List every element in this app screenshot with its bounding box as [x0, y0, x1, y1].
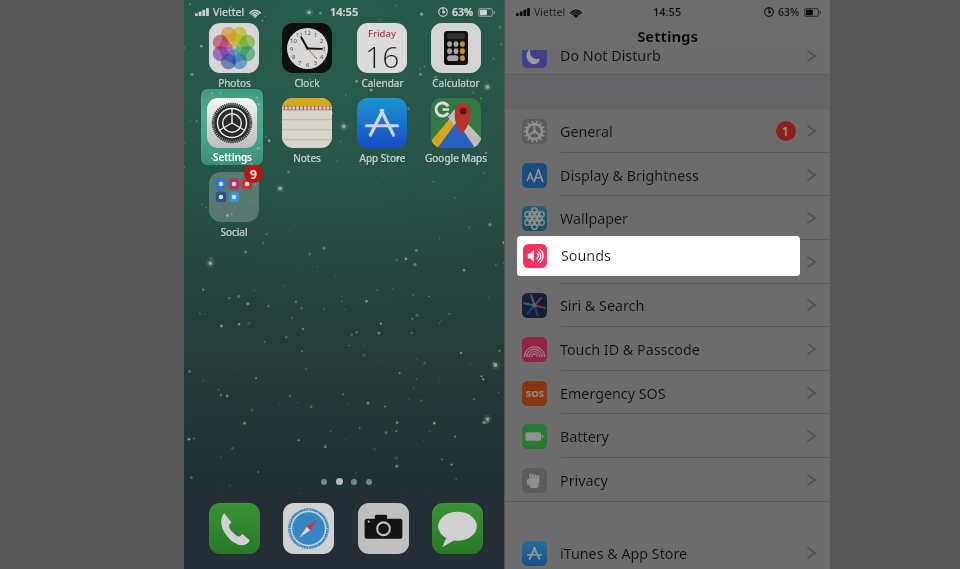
staticText: 2	[320, 37, 324, 45]
staticText: 7	[298, 59, 302, 67]
staticText: 11	[296, 31, 303, 39]
staticText: 4	[320, 53, 324, 61]
button[interactable]: Settings	[201, 89, 263, 165]
button[interactable]: Phone	[209, 503, 260, 554]
button[interactable]: Camera	[358, 503, 409, 554]
button[interactable]: Sounds	[517, 236, 800, 276]
staticText: 63%	[452, 5, 474, 19]
staticText: 14:55	[653, 4, 682, 19]
staticText: Settings	[505, 26, 830, 46]
button[interactable]: Notes	[270, 98, 344, 165]
staticText: 16	[365, 36, 400, 69]
staticText: 14:55	[330, 4, 359, 19]
button[interactable]: App Store	[345, 98, 419, 165]
staticText: SOS	[526, 387, 544, 400]
staticText: 1	[314, 31, 318, 39]
button[interactable]: Siri & Search	[505, 283, 830, 327]
staticText: 1	[782, 123, 790, 140]
button[interactable]: Safari	[283, 503, 334, 554]
button[interactable]: Sounds	[505, 240, 830, 284]
staticText: Do Not Disturb	[560, 50, 661, 65]
button[interactable]: 1	[270, 23, 344, 90]
staticText: Google Maps	[425, 151, 487, 165]
button[interactable]: Wallpaper	[505, 196, 830, 240]
staticText: Privacy	[560, 471, 608, 490]
staticText: Calendar	[361, 76, 404, 90]
button[interactable]: Messages	[432, 503, 483, 554]
staticText: 9	[250, 166, 257, 182]
staticText: 6	[306, 61, 310, 69]
staticText: iTunes & App Store	[560, 544, 688, 563]
staticText: Touch ID & Passcode	[560, 340, 700, 359]
button[interactable]: Touch ID & Passcode	[505, 327, 830, 371]
staticText: 5	[314, 59, 318, 67]
staticText: 12	[304, 29, 311, 37]
staticText: 8	[292, 53, 296, 61]
staticText: Sounds	[560, 253, 610, 272]
staticText: Friday	[368, 27, 396, 40]
button[interactable]: General	[505, 109, 830, 153]
button[interactable]: Display & Brightness	[505, 153, 830, 197]
button[interactable]: iTunes & App Store	[505, 531, 830, 569]
button[interactable]: Calculator	[419, 23, 493, 90]
staticText: 63%	[778, 5, 800, 19]
button[interactable]: Google Maps	[419, 98, 493, 165]
staticText: App Store	[359, 151, 406, 165]
staticText: Viettel	[534, 5, 566, 19]
button[interactable]: Battery	[505, 414, 830, 458]
staticText: Sounds	[561, 246, 611, 265]
staticText: Settings	[213, 150, 252, 164]
staticText: 3	[322, 45, 326, 53]
staticText: Notes	[293, 151, 321, 165]
button[interactable]: Photos	[197, 23, 271, 90]
button[interactable]: SOS	[505, 371, 830, 415]
staticText: Wallpaper	[560, 209, 628, 228]
staticText: 10	[290, 37, 297, 45]
staticText: Photos	[218, 76, 251, 90]
staticText: Battery	[560, 427, 609, 446]
staticText: Clock	[294, 76, 320, 90]
staticText: Emergency SOS	[560, 384, 666, 403]
button[interactable]: Privacy	[505, 458, 830, 502]
button[interactable]: Friday	[345, 23, 419, 90]
staticText: Display & Brightness	[560, 166, 699, 185]
staticText: General	[560, 122, 613, 141]
staticText: Social	[220, 225, 248, 239]
button[interactable]: Social	[197, 172, 271, 239]
staticText: Siri & Search	[560, 296, 645, 315]
staticText: Calculator	[432, 76, 480, 90]
staticText: 9	[290, 45, 294, 53]
staticText: Viettel	[213, 5, 245, 19]
